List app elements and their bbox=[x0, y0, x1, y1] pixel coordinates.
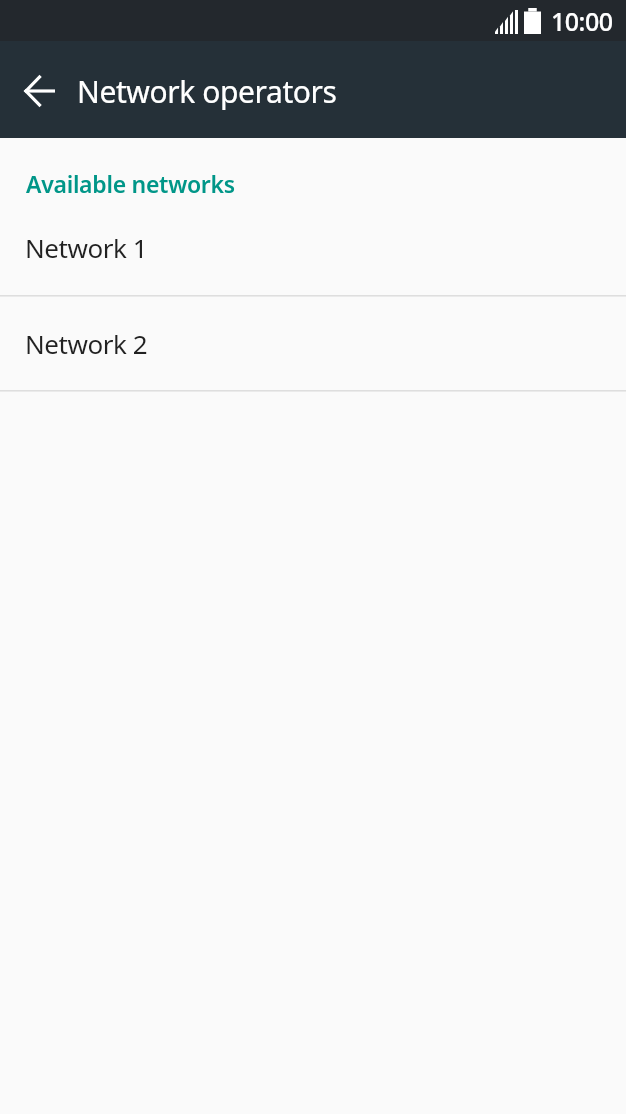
staticText: 10:00 bbox=[551, 4, 613, 38]
staticText: Available networks bbox=[26, 168, 235, 199]
staticText: Network 2 bbox=[25, 326, 148, 361]
staticText: Network 1 bbox=[25, 230, 148, 265]
button[interactable]: Network 1 bbox=[0, 200, 626, 295]
staticText: Network operators bbox=[77, 71, 337, 112]
button[interactable]: Navigate up bbox=[24, 76, 55, 106]
button[interactable]: Network 2 bbox=[0, 295, 626, 390]
